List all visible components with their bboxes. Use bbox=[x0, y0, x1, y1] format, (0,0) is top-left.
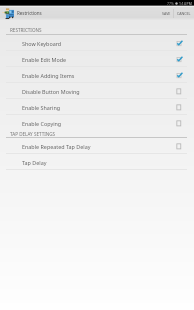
staticText: Enable Adding Items bbox=[22, 72, 75, 79]
staticText: Show Keyboard bbox=[22, 40, 62, 47]
staticText: 77% bbox=[167, 1, 174, 6]
staticText: TAP DELAY SETTINGS bbox=[10, 131, 56, 136]
button[interactable]: Disable Button Moving bbox=[0, 83, 194, 99]
staticText: Tap Delay bbox=[22, 159, 47, 166]
other: App icon bbox=[2, 8, 14, 20]
other: Unchecked bbox=[176, 88, 183, 95]
button[interactable]: Enable Edit Mode bbox=[0, 51, 194, 67]
staticText: RESTRICTIONS bbox=[10, 27, 42, 33]
other: Unchecked bbox=[176, 104, 183, 111]
button[interactable]: CANCEL bbox=[174, 7, 193, 20]
staticText: 1:14 PM bbox=[179, 1, 192, 6]
button[interactable]: Enable Sharing bbox=[0, 99, 194, 115]
button[interactable]: SAVE bbox=[159, 7, 173, 20]
staticText: CANCEL bbox=[177, 11, 191, 16]
button[interactable]: Enable Repeated Tap Delay bbox=[0, 138, 194, 154]
staticText: Enable Repeated Tap Delay bbox=[22, 143, 91, 150]
staticText: Disable Button Moving bbox=[22, 88, 80, 95]
staticText: Enable Edit Mode bbox=[22, 56, 67, 63]
button[interactable]: Enable Adding Items bbox=[0, 67, 194, 83]
other: Unchecked bbox=[176, 143, 183, 150]
staticText: Restrictions bbox=[17, 10, 42, 16]
staticText: SAVE bbox=[162, 11, 171, 16]
other: Checked bbox=[176, 56, 183, 63]
other: Checked bbox=[176, 72, 183, 79]
staticText: Enable Sharing bbox=[22, 104, 61, 111]
button[interactable]: Tap Delay bbox=[0, 154, 194, 170]
other: Unchecked bbox=[176, 120, 183, 127]
other: Checked bbox=[176, 40, 183, 47]
button[interactable]: Enable Copying bbox=[0, 115, 194, 131]
staticText: Enable Copying bbox=[22, 120, 62, 127]
button[interactable]: Show Keyboard bbox=[0, 35, 194, 51]
